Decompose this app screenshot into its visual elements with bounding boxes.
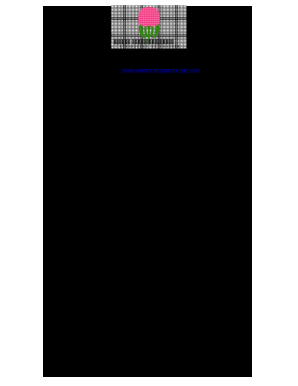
button[interactable]: www.austinestrogentherapy.com — [122, 67, 201, 73]
staticText: www.austinestrogentherapy.com — [122, 67, 201, 73]
